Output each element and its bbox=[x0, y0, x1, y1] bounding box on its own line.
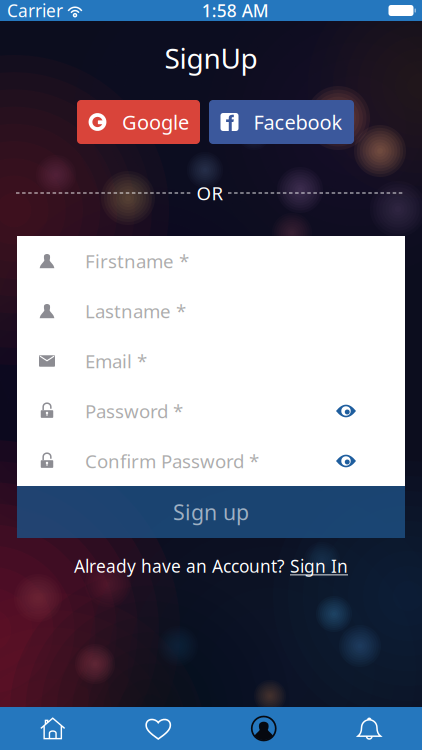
button[interactable]: Favorites bbox=[105, 716, 211, 741]
staticText: Carrier bbox=[7, 0, 63, 22]
staticText: Google bbox=[122, 109, 189, 135]
staticText: Facebook bbox=[253, 109, 342, 135]
button[interactable]: Home bbox=[0, 716, 105, 741]
staticText: Confirm Password * bbox=[85, 449, 259, 473]
staticText: SignUp bbox=[164, 39, 257, 77]
staticText: Firstname * bbox=[85, 249, 189, 273]
button[interactable]: Sign up bbox=[17, 486, 405, 538]
staticText: Lastname * bbox=[85, 299, 186, 323]
button[interactable]: Notifications bbox=[316, 716, 422, 741]
staticText: Email * bbox=[85, 349, 147, 373]
staticText: Sign In bbox=[290, 554, 348, 577]
button[interactable]: Facebook bbox=[209, 100, 354, 144]
button[interactable]: Show password bbox=[324, 441, 368, 481]
staticText: Password * bbox=[85, 399, 183, 423]
staticText: 1:58 AM bbox=[202, 0, 269, 22]
button[interactable]: Show password bbox=[324, 391, 368, 431]
staticText: OR bbox=[196, 181, 223, 205]
button[interactable]: Google bbox=[77, 100, 200, 144]
button[interactable]: Profile bbox=[211, 716, 316, 741]
staticText: Sign up bbox=[173, 498, 249, 526]
button[interactable]: Sign In bbox=[290, 554, 348, 577]
staticText: Already have an Account? bbox=[74, 554, 285, 577]
